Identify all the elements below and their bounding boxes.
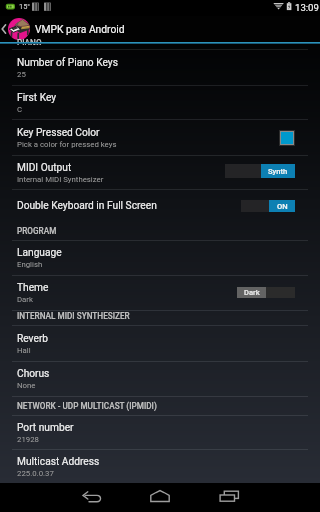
staticText: 25: [17, 70, 26, 79]
staticText: 225.0.0.37: [17, 469, 54, 478]
staticText: Language: [17, 247, 62, 259]
button[interactable]: Back: [66, 483, 118, 512]
button[interactable]: ON: [241, 200, 295, 212]
button[interactable]: Reverb: [0, 326, 320, 361]
staticText: Pick a color for pressed keys: [17, 140, 117, 149]
staticText: INTERNAL MIDI SYNTHESIZER: [17, 311, 130, 321]
staticText: Chorus: [17, 368, 50, 380]
staticText: Theme: [17, 282, 49, 294]
button[interactable]: First Key: [0, 86, 320, 119]
button[interactable]: Dark: [237, 287, 295, 298]
staticText: C: [17, 105, 23, 114]
staticText: 15°: [19, 2, 31, 11]
button[interactable]: Navigate up: [0, 16, 35, 42]
staticText: Reverb: [17, 333, 49, 345]
button[interactable]: Language: [0, 241, 320, 275]
staticText: None: [17, 381, 36, 390]
button[interactable]: Port number: [0, 416, 320, 449]
button[interactable]: Chorus: [0, 362, 320, 396]
staticText: NETWORK - UDP MULTICAST (IPMIDI): [17, 401, 157, 411]
button[interactable]: Key Pressed Color: [0, 120, 320, 155]
staticText: PIANO: [17, 38, 42, 45]
button[interactable]: Number of Piano Keys: [0, 50, 320, 85]
button[interactable]: Recent apps: [202, 483, 254, 512]
staticText: Double Keyboard in Full Screen: [17, 200, 157, 212]
staticText: First Key: [17, 92, 57, 104]
staticText: Key Pressed Color: [17, 127, 100, 139]
staticText: VMPK para Android: [35, 23, 125, 35]
button[interactable]: Double Keyboard in Full Screen: [0, 190, 320, 222]
staticText: ON: [277, 202, 288, 211]
button[interactable]: Home: [134, 483, 186, 512]
staticText: Multicast Address: [17, 456, 100, 468]
staticText: MIDI Output: [17, 162, 72, 174]
button[interactable]: MIDI Output: [0, 156, 320, 189]
staticText: Dark: [17, 295, 33, 304]
button[interactable]: Theme: [0, 276, 320, 310]
staticText: Internal MIDI Synthesizer: [17, 175, 104, 184]
button[interactable]: Synth: [225, 164, 295, 178]
staticText: Synth: [268, 167, 288, 176]
staticText: 13:09: [295, 2, 319, 13]
staticText: Port number: [17, 422, 74, 434]
button[interactable]: Multicast Address: [0, 450, 320, 483]
staticText: Hall: [17, 346, 31, 355]
staticText: 21928: [17, 435, 39, 444]
staticText: Dark: [244, 288, 260, 297]
staticText: Number of Piano Keys: [17, 57, 118, 69]
staticText: English: [17, 260, 43, 269]
staticText: PROGRAM: [17, 226, 57, 236]
